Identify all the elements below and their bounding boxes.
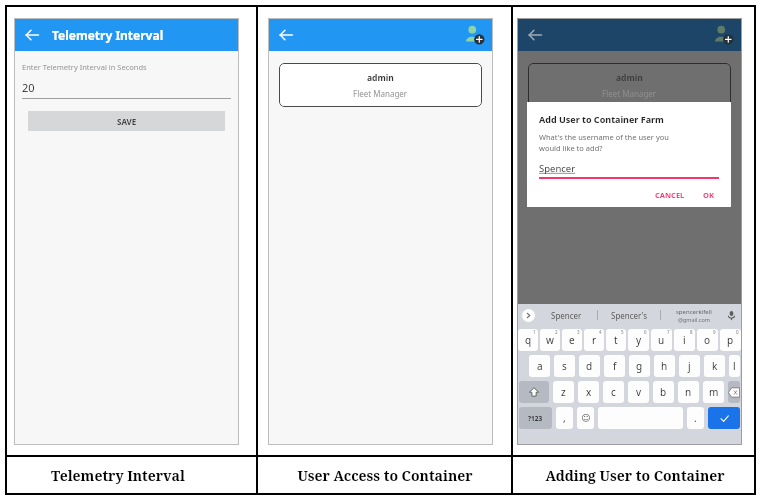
button[interactable]: Back [275, 24, 297, 46]
staticText: r [592, 333, 597, 347]
button[interactable]: l [729, 355, 740, 377]
button[interactable]: u [651, 329, 672, 351]
button[interactable]: Back [21, 24, 43, 46]
staticText: t [614, 333, 618, 347]
button[interactable]: o [697, 329, 718, 351]
button[interactable]: Back [524, 24, 546, 46]
staticText: b [660, 385, 667, 399]
staticText: q [525, 333, 532, 347]
staticText: 3 [577, 329, 580, 335]
staticText: Spencer's [611, 310, 648, 321]
button[interactable]: . [687, 407, 704, 429]
button[interactable]: OK [698, 188, 719, 202]
button[interactable]: Spencer [539, 162, 719, 179]
button[interactable]: More suggestions [522, 309, 535, 322]
staticText: f [613, 359, 617, 373]
staticText: 6 [644, 329, 647, 335]
staticText: 9 [713, 329, 716, 335]
staticText: Fleet Manager [602, 88, 657, 99]
button[interactable]: Spencer [535, 304, 597, 326]
staticText: 1 [533, 329, 536, 335]
staticText: Enter Telemetry Interval in Seconds [22, 62, 147, 72]
staticText: 5 [621, 329, 624, 335]
button[interactable]: Spencer's [598, 304, 660, 326]
other: Add user [712, 24, 734, 46]
staticText: Telemetry Interval [51, 466, 185, 485]
button[interactable]: Add user [712, 24, 734, 46]
button[interactable]: SAVE [28, 111, 225, 131]
staticText: k [712, 359, 718, 373]
button[interactable]: x [578, 381, 599, 403]
staticText: v [636, 385, 642, 399]
staticText: Fleet Manager [353, 88, 408, 99]
staticText: User Access to Container [297, 466, 473, 485]
button[interactable]: w [540, 329, 560, 351]
button[interactable]: d [579, 355, 600, 377]
button[interactable]: a [529, 355, 550, 377]
button[interactable]: c [603, 381, 624, 403]
button[interactable]: h [654, 355, 675, 377]
staticText: What's the username of the user you woul… [539, 132, 669, 153]
staticText: 20 [22, 80, 35, 95]
button[interactable]: p [720, 329, 741, 351]
button[interactable]: Shift [519, 381, 549, 403]
button[interactable]: Enter [708, 407, 740, 429]
button[interactable]: e [562, 329, 582, 351]
staticText: Adding User to Container [545, 466, 725, 485]
button[interactable]: j [679, 355, 700, 377]
button[interactable]: Add user [463, 24, 485, 46]
other: Shift [528, 386, 540, 398]
staticText: @gmail.com [678, 316, 710, 323]
staticText: 2 [555, 329, 558, 335]
button[interactable]: admin [528, 63, 731, 107]
staticText: 8 [690, 329, 693, 335]
staticText: SAVE [117, 116, 137, 127]
staticText: Telemetry Interval [52, 27, 164, 43]
staticText: m [709, 385, 719, 399]
staticText: o [704, 333, 711, 347]
staticText: , [563, 411, 566, 425]
staticText: j [688, 359, 691, 373]
staticText: OK [703, 190, 714, 200]
staticText: admin [367, 72, 394, 84]
button[interactable]: b [653, 381, 674, 403]
staticText: admin [616, 72, 643, 84]
button[interactable]: m [703, 381, 724, 403]
button[interactable]: admin [279, 63, 482, 107]
button[interactable]: v [628, 381, 649, 403]
staticText: s [562, 359, 567, 373]
other: Done [719, 413, 730, 424]
staticText: n [685, 385, 692, 399]
other: Backspace [728, 387, 740, 398]
staticText: i [683, 333, 686, 347]
button[interactable]: q [518, 329, 538, 351]
button[interactable]: ?123 [519, 407, 552, 429]
staticText: u [658, 333, 665, 347]
button[interactable]: CANCEL [650, 188, 690, 202]
staticText: Add User to Container Farm [539, 113, 664, 125]
button[interactable]: s [554, 355, 575, 377]
button[interactable]: g [629, 355, 650, 377]
staticText: Spencer [539, 162, 576, 175]
button[interactable]: t [606, 329, 626, 351]
button[interactable]: y [628, 329, 649, 351]
button[interactable]: i [674, 329, 695, 351]
button[interactable]: k [704, 355, 725, 377]
button[interactable]: ☺ [577, 407, 594, 429]
button[interactable]: spencerkifell [661, 304, 726, 326]
button[interactable]: r [584, 329, 604, 351]
staticText: 7 [667, 329, 670, 335]
button[interactable]: Voice input [726, 310, 737, 321]
button[interactable]: , [556, 407, 573, 429]
button[interactable]: z [553, 381, 574, 403]
button[interactable]: 20 [22, 80, 231, 99]
staticText: CANCEL [655, 190, 685, 200]
staticText: e [569, 333, 575, 347]
staticText: g [636, 359, 643, 373]
staticText: 4 [599, 329, 602, 335]
other: Add user [463, 24, 485, 46]
button[interactable]: n [678, 381, 699, 403]
button[interactable]: Backspace [728, 381, 740, 403]
button[interactable]: f [604, 355, 625, 377]
